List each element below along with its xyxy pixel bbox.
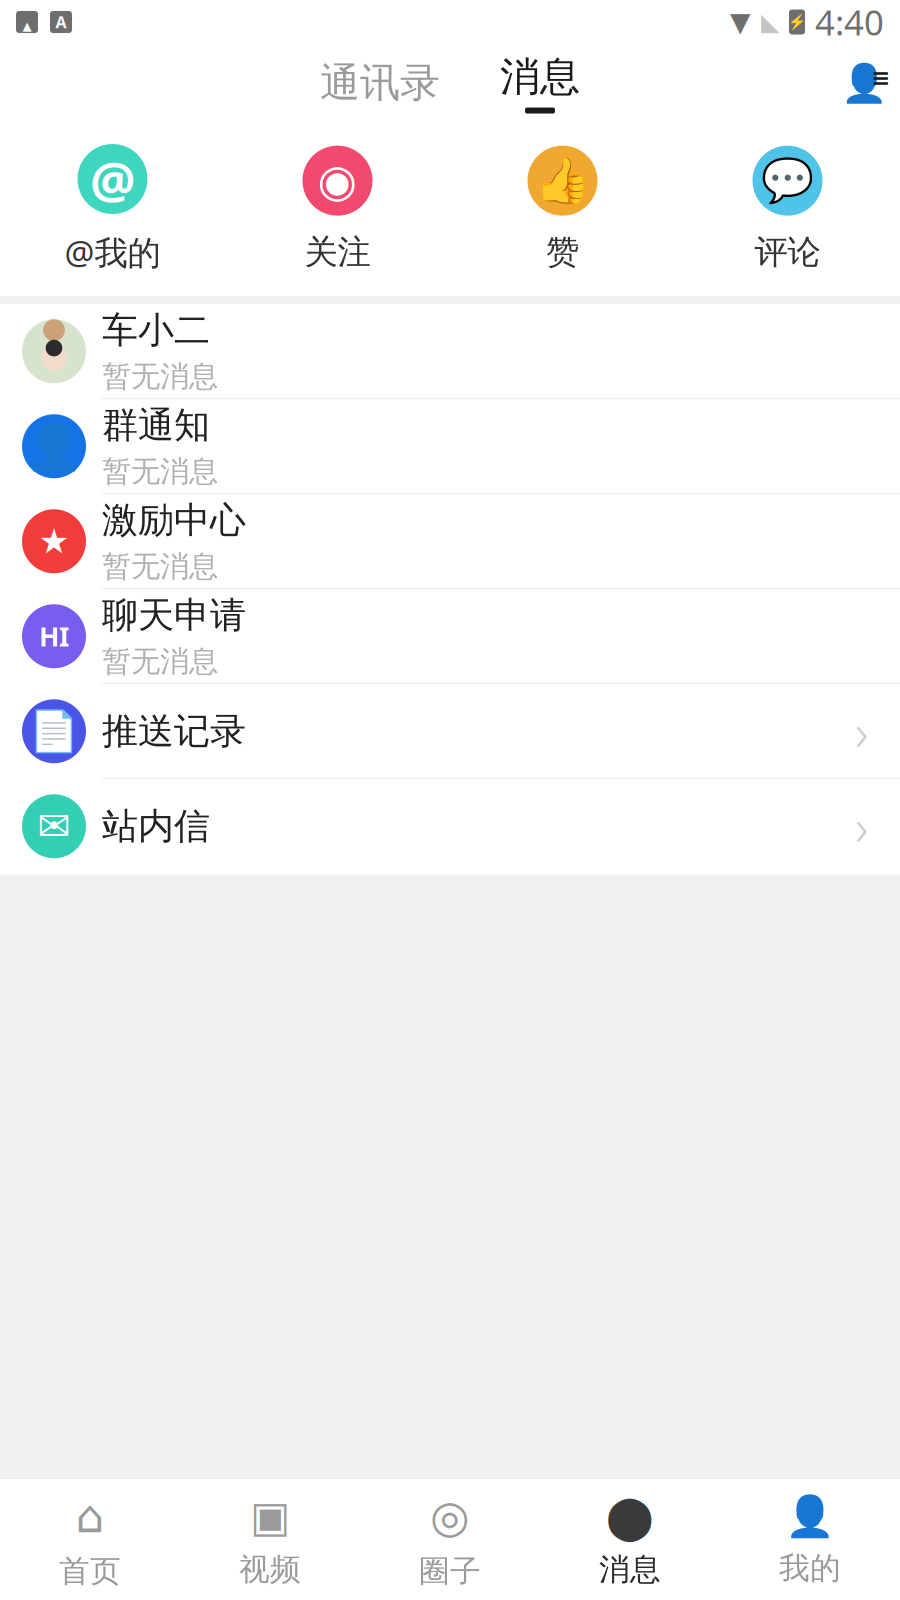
button[interactable]: 👤 — [0, 399, 900, 494]
button[interactable]: ★ — [0, 494, 900, 589]
staticText: 推送记录 — [102, 709, 246, 753]
staticText: ◎ — [430, 1491, 470, 1542]
button[interactable]: 消息 — [500, 52, 580, 113]
staticText: ◣ — [761, 8, 779, 36]
button[interactable]: HI — [0, 589, 900, 684]
button[interactable]: ⌂ — [0, 1479, 180, 1600]
button[interactable]: 通讯录 — [320, 52, 440, 113]
staticText: 👍 — [534, 155, 590, 207]
staticText: ≡ — [871, 65, 890, 91]
staticText: › — [855, 698, 868, 765]
staticText: @ — [90, 145, 135, 213]
button[interactable]: ▣ — [180, 1480, 360, 1598]
staticText: 💬 — [761, 156, 814, 205]
staticText: @我的 — [64, 230, 160, 274]
staticText: HI — [39, 619, 69, 654]
button[interactable]: 💬 — [675, 146, 900, 273]
staticText: 群通知 — [102, 403, 210, 447]
staticText: 激励中心 — [102, 498, 246, 542]
button[interactable]: 📄 — [0, 684, 900, 779]
staticText: 消息 — [599, 1551, 661, 1588]
staticText: ★ — [38, 522, 69, 561]
staticText: 站内信 — [102, 804, 210, 848]
staticText: 我的 — [779, 1549, 841, 1587]
button[interactable]: 👤 — [720, 1482, 900, 1597]
button[interactable]: ✉ — [0, 779, 900, 874]
staticText: ⌂ — [75, 1491, 104, 1542]
button[interactable]: 车小二 — [0, 304, 900, 399]
button[interactable]: 👍 — [450, 146, 675, 273]
staticText: 👤 — [26, 420, 82, 472]
staticText: 车小二 — [102, 308, 210, 352]
staticText: › — [855, 793, 868, 860]
staticText: 暂无消息 — [102, 548, 218, 584]
staticText: 通讯录 — [320, 58, 440, 107]
button[interactable]: 通讯录 — [828, 51, 900, 115]
staticText: ▼ — [730, 7, 751, 37]
staticText: 4:40 — [815, 0, 884, 45]
staticText: ✉ — [37, 804, 71, 849]
button[interactable]: ⬤ — [540, 1480, 720, 1598]
staticText: 👤 — [785, 1494, 835, 1539]
staticText: A — [55, 11, 66, 33]
staticText: 聊天申请 — [102, 593, 246, 637]
staticText: 评论 — [754, 232, 820, 273]
staticText: ⬤ — [606, 1492, 654, 1541]
staticText: 消息 — [500, 52, 580, 101]
staticText: 赞 — [546, 232, 579, 273]
staticText: 视频 — [239, 1551, 301, 1588]
button[interactable]: @ — [0, 144, 225, 274]
staticText: ▣ — [250, 1492, 290, 1541]
staticText: ⚡ — [788, 14, 806, 30]
staticText: ▲ — [22, 19, 31, 33]
staticText: 圈子 — [419, 1552, 481, 1590]
staticText: 暂无消息 — [102, 358, 218, 394]
staticText: 首页 — [59, 1552, 121, 1590]
staticText: ◉ — [317, 155, 357, 206]
button[interactable]: ◉ — [225, 146, 450, 273]
button[interactable]: ◎ — [360, 1479, 540, 1600]
staticText: 关注 — [304, 232, 370, 273]
staticText: 📄 — [29, 708, 79, 754]
staticText: 暂无消息 — [102, 453, 218, 489]
staticText: 👤 — [841, 62, 887, 104]
staticText: 暂无消息 — [102, 643, 218, 679]
